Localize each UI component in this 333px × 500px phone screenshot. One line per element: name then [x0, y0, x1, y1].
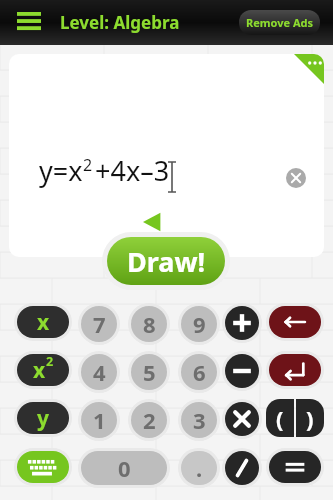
button[interactable]: Previous: [142, 211, 162, 233]
staticText: 2: [46, 354, 54, 370]
staticText: Draw!: [127, 243, 206, 280]
button[interactable]: 3: [181, 402, 217, 438]
button[interactable]: y: [17, 402, 69, 434]
staticText: Remove Ads: [246, 15, 313, 30]
button[interactable]: Plus: [225, 306, 259, 340]
staticText: 8: [143, 309, 156, 339]
button[interactable]: 2: [131, 402, 167, 438]
staticText: y: [37, 404, 49, 433]
staticText: 3: [193, 405, 206, 435]
staticText: +4x–3: [95, 152, 170, 189]
button[interactable]: 5: [131, 354, 167, 390]
button[interactable]: x: [17, 354, 69, 386]
button[interactable]: More options: [294, 54, 324, 84]
staticText: .: [196, 453, 203, 483]
button[interactable]: Draw!: [107, 237, 225, 285]
button[interactable]: Minus: [225, 354, 259, 388]
button[interactable]: Backspace: [269, 306, 321, 338]
button[interactable]: Enter: [269, 354, 321, 386]
button[interactable]: Keyboard: [17, 451, 69, 483]
staticText: 7: [93, 309, 106, 339]
staticText: x: [37, 308, 50, 337]
staticText: (: [276, 403, 284, 433]
button[interactable]: 6: [181, 354, 217, 390]
button[interactable]: 9: [181, 306, 217, 342]
staticText: 5: [143, 357, 156, 387]
button[interactable]: Equals: [269, 451, 321, 483]
button[interactable]: 7: [81, 306, 117, 342]
button[interactable]: Divide: [225, 451, 259, 485]
staticText: 6: [193, 357, 206, 387]
staticText: 4: [93, 357, 106, 387]
button[interactable]: x: [17, 306, 69, 338]
button[interactable]: Open parenthesis: [266, 399, 294, 437]
button[interactable]: Multiply: [225, 402, 259, 436]
button[interactable]: 0: [81, 451, 167, 485]
staticText: 1: [93, 405, 106, 435]
staticText: 0: [118, 453, 131, 483]
staticText: ): [306, 403, 314, 433]
button[interactable]: Clear: [286, 168, 306, 188]
button[interactable]: .: [181, 451, 217, 485]
staticText: x: [33, 356, 46, 385]
staticText: 9: [193, 309, 206, 339]
button[interactable]: Menu: [17, 12, 41, 32]
staticText: Level: Algebra: [60, 11, 180, 34]
button[interactable]: 8: [131, 306, 167, 342]
button[interactable]: Remove Ads: [239, 10, 320, 35]
staticText: 2: [83, 154, 93, 176]
staticText: 2: [143, 405, 156, 435]
staticText: y=x: [39, 152, 83, 189]
button[interactable]: Close parenthesis: [296, 399, 324, 437]
button[interactable]: 4: [81, 354, 117, 390]
button[interactable]: 1: [81, 402, 117, 438]
